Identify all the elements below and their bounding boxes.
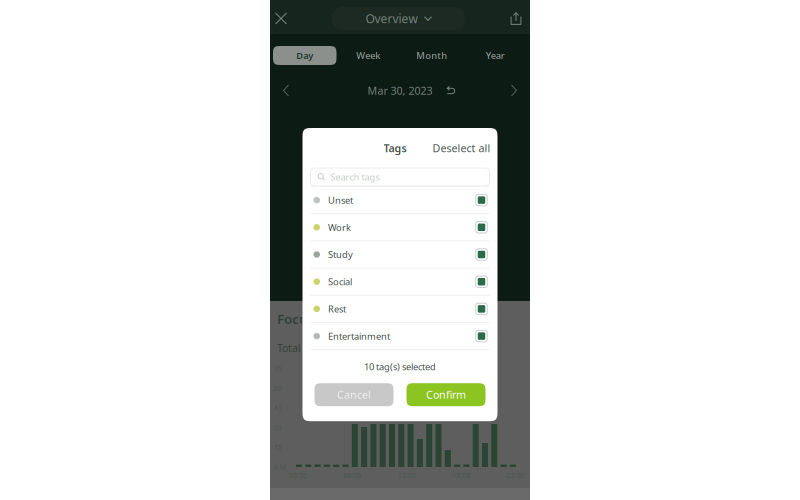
staticText: Tags xyxy=(383,141,406,155)
staticText: 00:00 xyxy=(289,471,307,480)
staticText: Search tags xyxy=(330,171,379,183)
staticText: Week xyxy=(356,49,380,62)
staticText: Overview xyxy=(365,10,417,26)
button[interactable]: Previous day xyxy=(274,77,298,103)
button[interactable]: Reset to today xyxy=(442,81,460,99)
staticText: 23:00 xyxy=(507,471,525,480)
staticText: Total focus time xyxy=(277,341,357,355)
button[interactable]: Year xyxy=(463,46,527,65)
staticText: 45 xyxy=(274,404,282,412)
button[interactable]: Day xyxy=(273,46,336,65)
staticText: Work xyxy=(328,221,351,233)
button[interactable]: Close xyxy=(268,5,294,31)
button[interactable]: Deselect all xyxy=(432,141,490,155)
staticText: Focus xyxy=(277,310,315,328)
staticText: 10 tag(s) selected xyxy=(364,360,436,373)
button[interactable]: Next day xyxy=(502,77,526,103)
button[interactable]: Study xyxy=(302,241,497,268)
staticText: 12:00 xyxy=(398,471,416,480)
button[interactable]: Unset xyxy=(302,187,497,213)
staticText: 60 xyxy=(274,384,282,393)
staticText: Confirm xyxy=(426,388,466,402)
staticText: Rest xyxy=(328,303,346,315)
staticText: 18:00 xyxy=(452,471,470,480)
staticText: Entertainment xyxy=(328,330,390,342)
button[interactable]: Cancel xyxy=(314,383,393,406)
button[interactable]: Week xyxy=(336,46,400,65)
staticText: 75 xyxy=(274,364,282,373)
staticText: 15 xyxy=(274,443,282,452)
button[interactable]: Social xyxy=(302,269,497,295)
staticText: Unset xyxy=(328,194,353,206)
button[interactable]: Confirm xyxy=(406,383,485,406)
staticText: Day xyxy=(296,49,313,62)
button[interactable]: Overview xyxy=(331,7,465,30)
staticText: Year xyxy=(486,49,505,62)
button[interactable]: Month xyxy=(400,46,463,65)
staticText: 06:00 xyxy=(343,471,361,480)
staticText: Deselect all xyxy=(432,141,490,155)
button[interactable]: Rest xyxy=(302,296,497,322)
staticText: Social xyxy=(328,275,352,288)
staticText: 0 M xyxy=(274,462,286,471)
staticText: Study xyxy=(328,248,353,261)
button[interactable]: Share xyxy=(503,5,529,31)
button[interactable]: Work xyxy=(302,214,497,240)
staticText: Cancel xyxy=(337,388,371,402)
staticText: 30 xyxy=(274,423,282,432)
button[interactable]: Entertainment xyxy=(302,323,497,349)
staticText: Mar 30, 2023 xyxy=(367,83,432,98)
staticText: Month xyxy=(416,49,447,62)
